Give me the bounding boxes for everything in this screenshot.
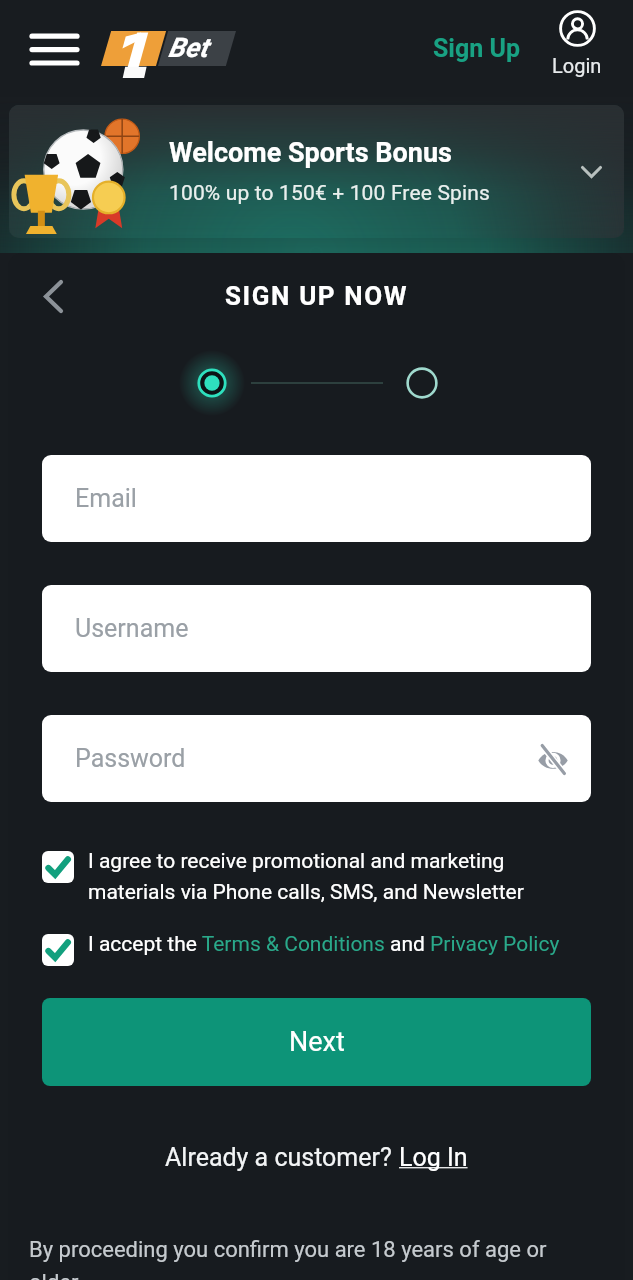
button[interactable]: Back: [28, 271, 78, 321]
button[interactable]: I accept the Terms & Conditions and Priv…: [42, 932, 591, 966]
staticText: I agree to receive promotional and marke…: [88, 849, 591, 904]
staticText: 100% up to 150€ + 100 Free Spins: [169, 181, 490, 206]
button[interactable]: Menu: [20, 17, 88, 79]
staticText: Sign Up: [433, 34, 521, 63]
staticText: Password: [75, 744, 186, 773]
button[interactable]: I agree to receive promotional and marke…: [42, 849, 591, 904]
staticText: Bet: [168, 32, 208, 64]
button[interactable]: Sign Up: [423, 26, 531, 71]
staticText: By proceeding you confirm you are 18 yea…: [29, 1237, 604, 1280]
button[interactable]: Username: [42, 585, 591, 672]
button[interactable]: Next: [42, 998, 591, 1086]
staticText: Username: [75, 614, 189, 643]
button[interactable]: Password: [42, 715, 591, 802]
staticText: I accept the Terms & Conditions and Priv…: [88, 932, 560, 957]
staticText: Welcome Sports Bonus: [169, 137, 452, 169]
button[interactable]: Email: [42, 455, 591, 542]
staticText: Log In: [399, 1143, 468, 1172]
staticText: Login: [552, 54, 602, 77]
staticText: Next: [289, 1026, 345, 1058]
staticText: Email: [75, 484, 137, 513]
button[interactable]: Expand bonus: [568, 149, 614, 195]
button[interactable]: Show password: [530, 736, 576, 782]
button[interactable]: Log In: [399, 1143, 468, 1172]
button[interactable]: Welcome Sports Bonus: [9, 105, 624, 238]
staticText: SIGN UP NOW: [225, 281, 409, 311]
staticText: Already a customer?: [165, 1143, 399, 1172]
button[interactable]: Login: [548, 10, 606, 77]
